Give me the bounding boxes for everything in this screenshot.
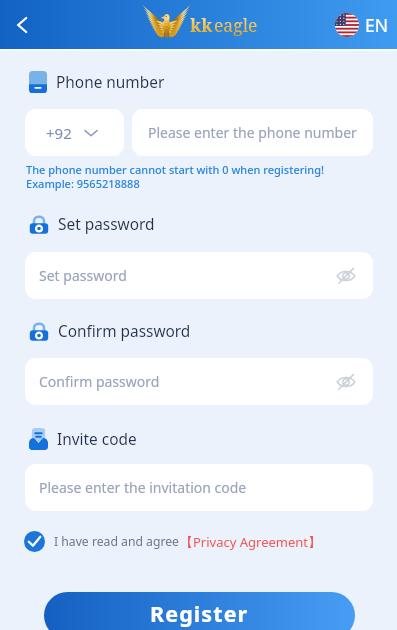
button[interactable]: Confirm password — [25, 358, 373, 405]
staticText: Confirm password — [39, 372, 160, 391]
button[interactable]: +92 — [25, 109, 124, 156]
staticText: The phone number cannot start with 0 whe… — [26, 162, 325, 191]
staticText: Register — [150, 599, 249, 628]
staticText: +92 — [46, 123, 72, 143]
staticText: EN — [365, 13, 389, 37]
button[interactable]: Please enter the invitation code — [25, 464, 373, 511]
button[interactable]: Show password — [334, 264, 358, 288]
button[interactable]: Register — [44, 592, 355, 630]
staticText: eagle — [214, 13, 258, 37]
button[interactable]: Set password — [25, 252, 373, 299]
staticText: Please enter the phone number — [148, 123, 357, 142]
staticText: Set password — [39, 266, 127, 285]
button[interactable]: I have read and agree checkbox — [24, 531, 45, 552]
button[interactable]: EN — [335, 13, 389, 37]
staticText: Invite code — [57, 429, 137, 450]
staticText: kk — [190, 13, 213, 37]
staticText: Set password — [58, 214, 155, 235]
staticText: Please enter the invitation code — [39, 478, 247, 497]
button[interactable]: Show password — [334, 370, 358, 394]
button[interactable]: Back — [4, 7, 40, 43]
staticText: Phone number — [56, 72, 165, 93]
button[interactable]: 【Privacy Agreement】 — [180, 533, 322, 551]
button[interactable]: I have read and agree — [54, 533, 179, 550]
button[interactable]: Please enter the phone number — [132, 109, 373, 156]
staticText: Confirm password — [58, 321, 191, 342]
